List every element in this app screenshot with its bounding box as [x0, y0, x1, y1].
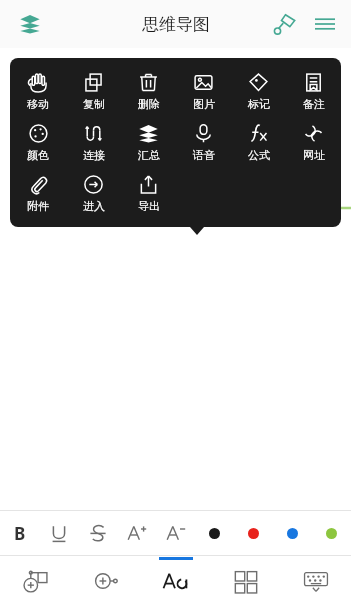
button[interactable]: 汇总	[121, 117, 176, 168]
button[interactable]: 连接	[66, 117, 121, 168]
staticText: 汇总	[138, 148, 160, 162]
staticText: 进入	[83, 199, 105, 213]
staticText: 标记	[248, 97, 270, 111]
staticText: 复制	[83, 97, 105, 111]
staticText: 导出	[138, 199, 160, 213]
button[interactable]: Add sibling node	[0, 556, 71, 600]
button[interactable]: 标记	[231, 66, 286, 117]
button[interactable]: 删除	[121, 66, 176, 117]
button[interactable]: Green	[312, 511, 351, 555]
button[interactable]: 复制	[66, 66, 121, 117]
button[interactable]: 移动	[10, 66, 66, 117]
button[interactable]: Strikethrough	[78, 511, 117, 555]
staticText: 连接	[83, 148, 105, 162]
button[interactable]: Increase font size	[117, 511, 156, 555]
button[interactable]: Layers	[10, 4, 50, 44]
button[interactable]: 语音	[176, 117, 231, 168]
button[interactable]: 公式	[231, 117, 286, 168]
staticText: 公式	[248, 148, 270, 162]
staticText: 删除	[138, 97, 160, 111]
button[interactable]: Layout	[211, 556, 281, 600]
button[interactable]: Menu	[305, 4, 345, 44]
staticText: 语音	[193, 148, 215, 162]
button[interactable]: Add child node	[71, 556, 141, 600]
button[interactable]: 附件	[10, 168, 66, 219]
button[interactable]: Decrease font size	[156, 511, 195, 555]
button[interactable]: Red	[234, 511, 273, 555]
staticText: 网址	[303, 148, 325, 162]
staticText: 颜色	[27, 148, 49, 162]
staticText: 移动	[27, 97, 49, 111]
button[interactable]: B	[0, 511, 39, 555]
button[interactable]: Keyboard	[281, 556, 351, 600]
button[interactable]: 图片	[176, 66, 231, 117]
button[interactable]: 进入	[66, 168, 121, 219]
staticText: 图片	[193, 97, 215, 111]
staticText: 附件	[27, 199, 49, 213]
button[interactable]: 网址	[286, 117, 341, 168]
button[interactable]: Theme brush	[265, 4, 305, 44]
button[interactable]: 导出	[121, 168, 176, 219]
staticText: B	[14, 522, 26, 545]
button[interactable]: 颜色	[10, 117, 66, 168]
button[interactable]: Black	[195, 511, 234, 555]
button[interactable]: Text format	[141, 556, 211, 600]
staticText: 备注	[303, 97, 325, 111]
button[interactable]: 备注	[286, 66, 341, 117]
staticText: 思维导图	[142, 14, 210, 35]
button[interactable]: Blue	[273, 511, 312, 555]
button[interactable]: Underline	[39, 511, 78, 555]
